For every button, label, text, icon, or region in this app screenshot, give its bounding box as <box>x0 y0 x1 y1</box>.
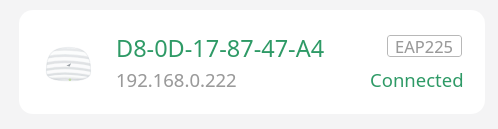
staticText: 192.168.0.222 <box>116 67 237 92</box>
staticText: EAP225 <box>395 35 454 57</box>
staticText: D8-0D-17-87-47-A4 <box>116 32 325 64</box>
staticText: Connected <box>370 67 464 92</box>
button[interactable]: D8-0D-17-87-47-A4 <box>19 10 485 114</box>
button[interactable]: EAP225 <box>387 35 462 57</box>
